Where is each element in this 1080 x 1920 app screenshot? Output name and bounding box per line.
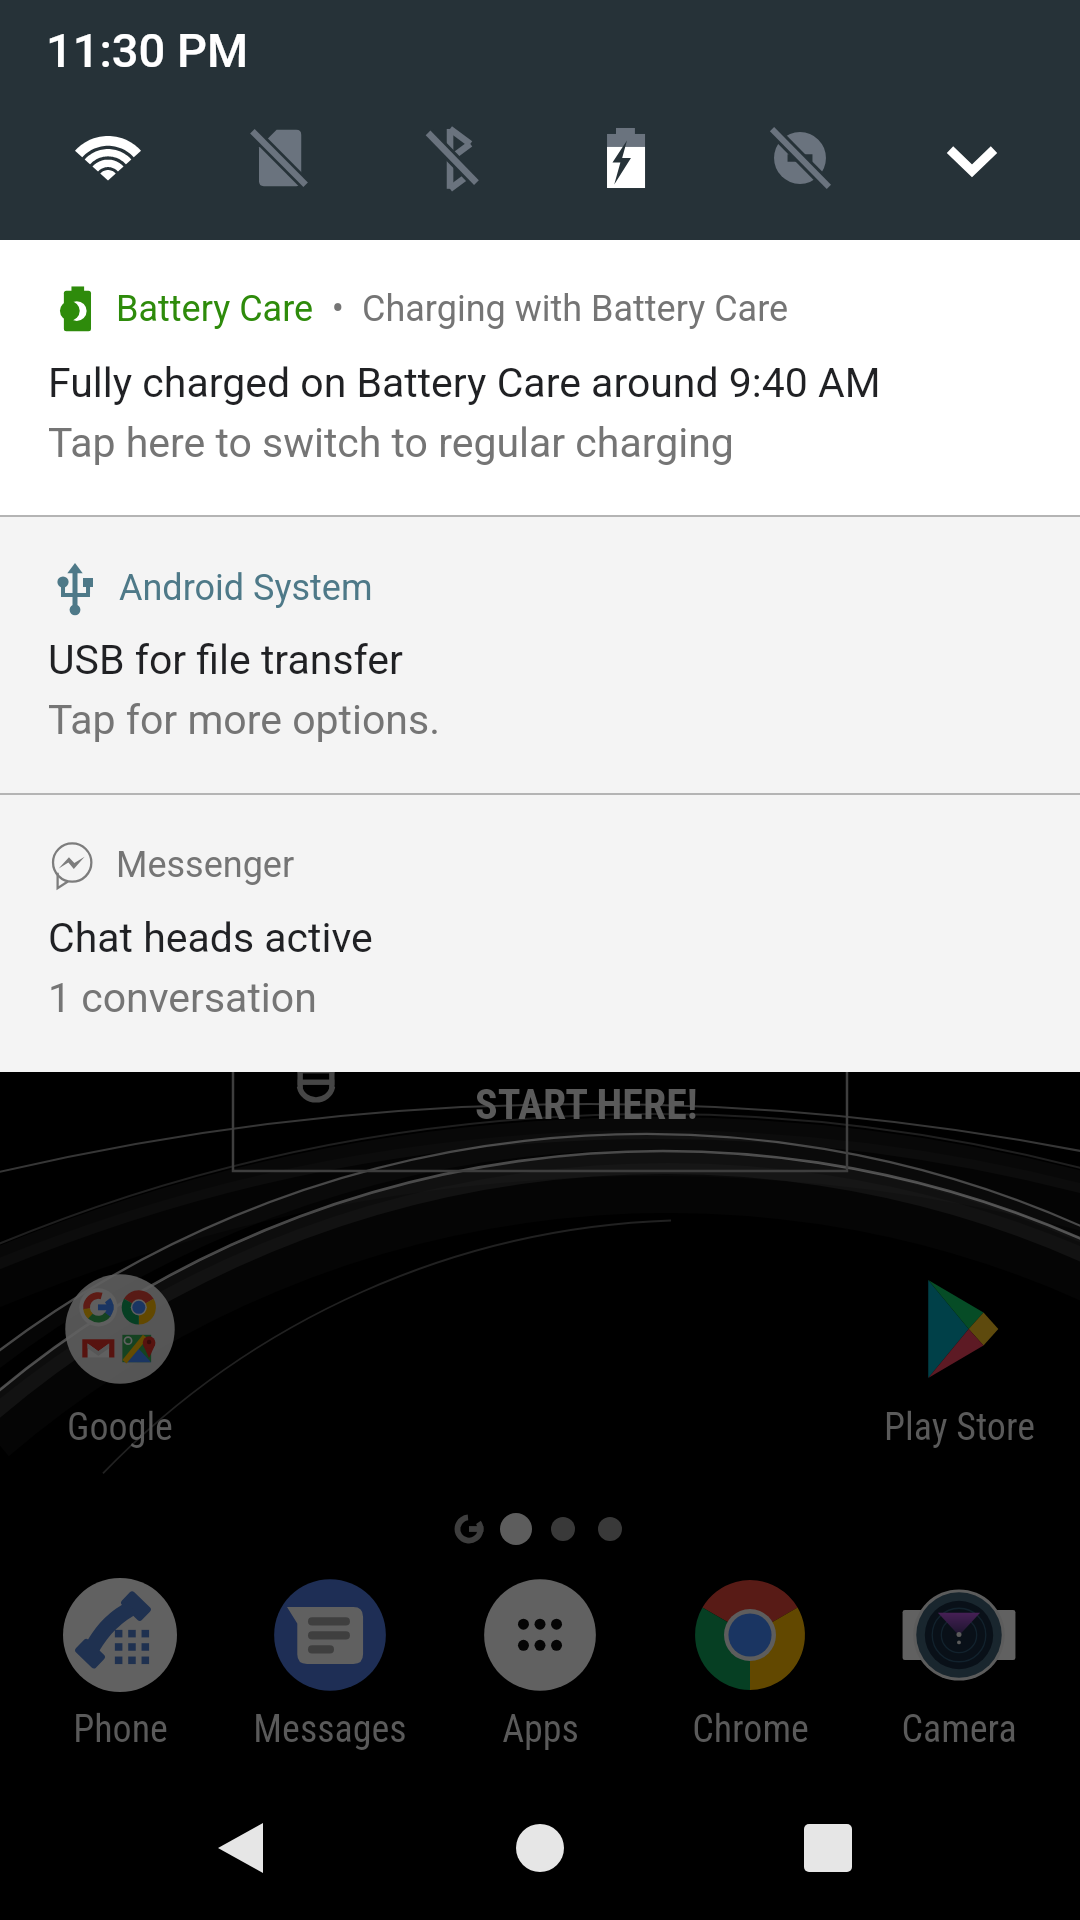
staticText: Tap for more options. <box>48 696 440 744</box>
staticText: Chat heads active <box>48 914 373 962</box>
staticText: Charging with Battery Care <box>362 288 789 330</box>
button[interactable]: Home <box>480 1788 600 1908</box>
button[interactable]: Apps <box>435 1578 645 1752</box>
button[interactable]: Do not disturb <box>756 114 844 202</box>
staticText: Tap here to switch to regular charging <box>48 419 734 467</box>
staticText: USB for file transfer <box>48 636 403 684</box>
button[interactable]: Messenger <box>0 795 1080 1072</box>
staticText: Fully charged on Battery Care around 9:4… <box>48 359 881 407</box>
staticText: 1 conversation <box>48 974 317 1022</box>
button[interactable]: Camera <box>854 1578 1064 1752</box>
button[interactable]: Collapse quick settings <box>928 114 1016 202</box>
staticText: Camera <box>901 1707 1017 1752</box>
staticText: • <box>314 288 362 330</box>
button[interactable]: Recent apps <box>768 1788 888 1908</box>
button[interactable]: Play Store <box>854 1272 1064 1450</box>
staticText: Play Store <box>884 1405 1035 1450</box>
button[interactable]: Phone <box>15 1578 225 1752</box>
button[interactable]: Chrome <box>645 1578 855 1752</box>
staticText: 11:30 PM <box>46 23 249 78</box>
staticText: Messenger <box>116 844 295 886</box>
button[interactable]: Android System <box>0 517 1080 793</box>
staticText: Chrome <box>692 1707 809 1752</box>
staticText: Messages <box>253 1707 407 1752</box>
button[interactable]: Wi-Fi <box>64 114 152 202</box>
button[interactable]: Bluetooth off <box>410 114 498 202</box>
staticText: Apps <box>502 1707 579 1752</box>
button[interactable]: START HERE! <box>232 1011 848 1172</box>
button[interactable]: Back <box>175 1788 295 1908</box>
button[interactable]: Battery Care <box>0 240 1080 515</box>
staticText: START HERE! <box>475 1080 698 1129</box>
staticText: Phone <box>73 1707 168 1752</box>
button[interactable]: Google <box>15 1272 225 1450</box>
button[interactable]: Charging <box>583 114 671 202</box>
button[interactable]: Messages <box>225 1578 435 1752</box>
button[interactable]: No SIM card <box>237 114 325 202</box>
staticText: Google <box>67 1405 173 1450</box>
staticText: Battery Care <box>116 288 314 330</box>
staticText: Android System <box>119 567 373 609</box>
